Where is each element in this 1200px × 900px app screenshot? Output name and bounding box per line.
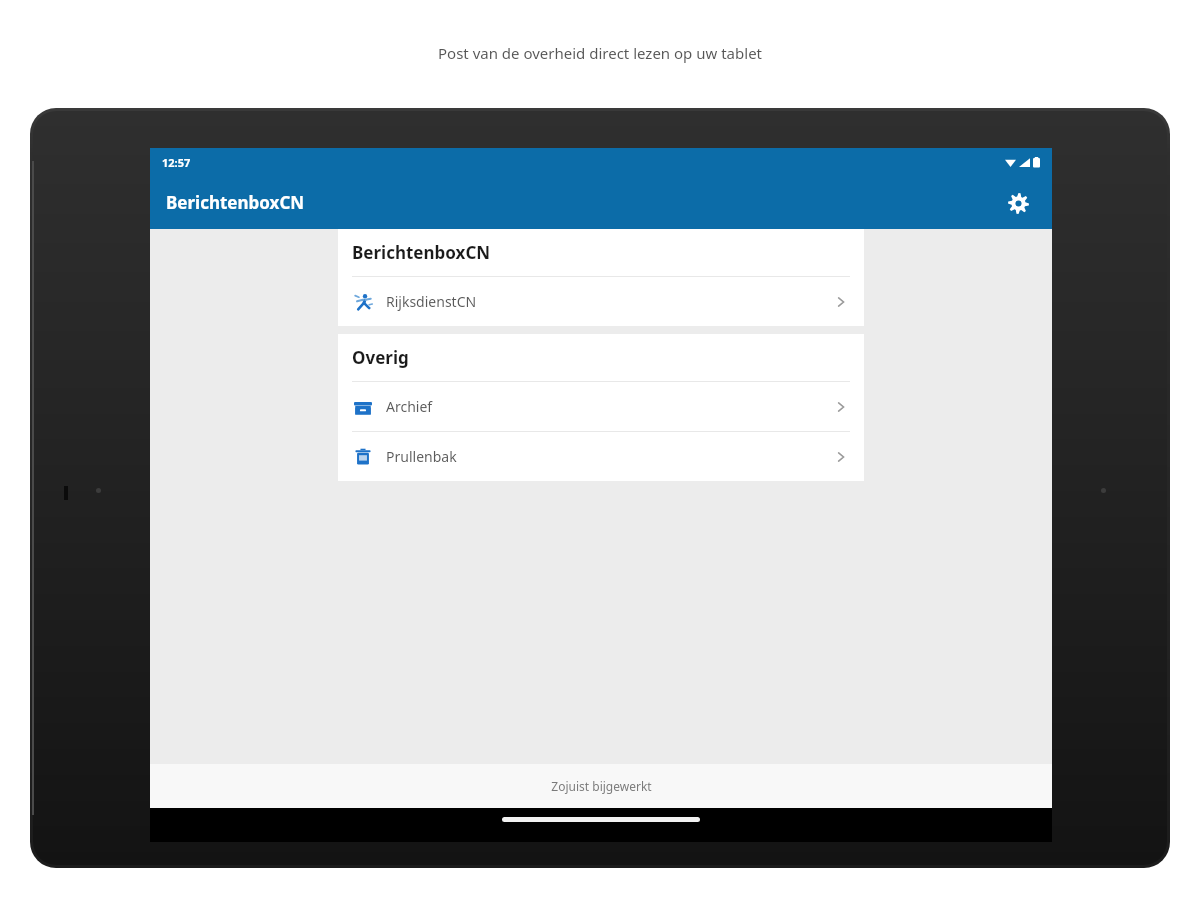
staticText: Overig [352,346,409,369]
staticText: BerichtenboxCN [166,191,305,214]
button[interactable]: Instellingen [996,181,1040,225]
staticText: Post van de overheid direct lezen op uw … [438,43,763,63]
staticText: Zojuist bijgewerkt [551,778,652,794]
staticText: 12:57 [162,155,191,170]
button[interactable]: RijksdienstCN [338,277,864,326]
button[interactable]: Prullenbak [338,432,864,481]
staticText: BerichtenboxCN [352,241,491,264]
button[interactable]: Archief [338,382,864,431]
staticText: Prullenbak [386,447,457,466]
staticText: Archief [386,397,433,416]
staticText: RijksdienstCN [386,292,477,311]
